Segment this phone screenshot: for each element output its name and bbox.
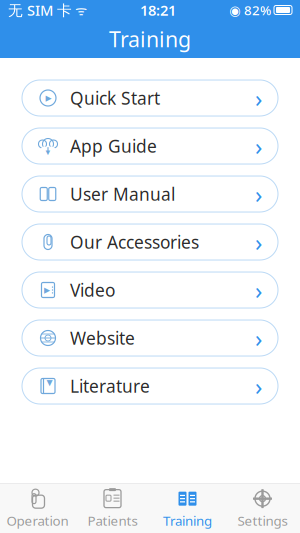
staticText: ᯤ: [72, 1, 87, 19]
staticText: Video: [70, 278, 115, 301]
staticText: User Manual: [70, 182, 175, 205]
staticText: Patients: [87, 512, 137, 529]
staticText: ▼: [46, 378, 52, 387]
staticText: ◉ 82%: [229, 1, 271, 19]
staticText: ›: [255, 322, 262, 354]
staticText: ▶: [44, 285, 50, 295]
staticText: ▾: [45, 147, 50, 157]
button[interactable]: Settings: [225, 484, 300, 533]
button[interactable]: Website: [22, 320, 278, 356]
button[interactable]: ▶: [22, 272, 278, 308]
staticText: ▶: [45, 93, 51, 103]
staticText: 无 SIM 卡: [8, 0, 72, 20]
button[interactable]: ▶: [22, 80, 278, 116]
staticText: Website: [70, 326, 135, 349]
button[interactable]: Our Accessories: [22, 224, 278, 260]
staticText: Training: [163, 512, 212, 529]
staticText: ›: [255, 82, 262, 114]
button[interactable]: Training: [150, 484, 225, 533]
staticText: Operation: [6, 512, 68, 529]
staticText: ›: [255, 370, 262, 402]
staticText: ›: [255, 274, 262, 306]
staticText: ›: [255, 226, 262, 258]
button[interactable]: Patients: [75, 484, 150, 533]
button[interactable]: ▼: [22, 368, 278, 404]
staticText: ›: [255, 130, 262, 162]
staticText: Quick Start: [70, 86, 160, 109]
staticText: Literature: [70, 374, 150, 397]
button[interactable]: User Manual: [22, 176, 278, 212]
staticText: Training: [109, 25, 191, 53]
button[interactable]: Operation: [0, 484, 75, 533]
staticText: ›: [255, 178, 262, 210]
staticText: App Guide: [70, 134, 157, 157]
staticText: Settings: [237, 512, 287, 529]
staticText: Our Accessories: [70, 230, 199, 253]
staticText: 18:21: [140, 0, 176, 20]
button[interactable]: ▾: [22, 128, 278, 164]
